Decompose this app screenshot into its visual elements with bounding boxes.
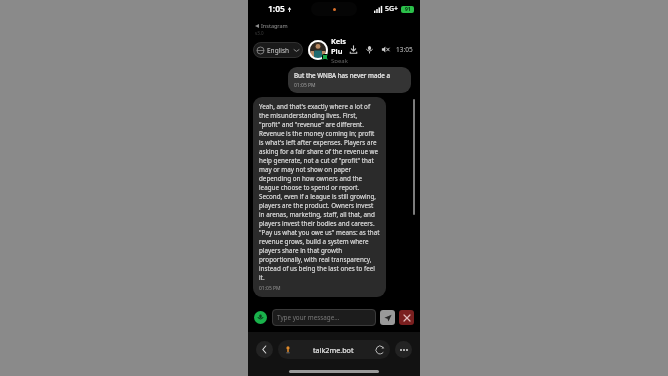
other: Reload: [376, 346, 384, 354]
staticText: talk2me.bot: [313, 345, 354, 355]
button[interactable]: Profile photo: [308, 40, 328, 60]
button[interactable]: Microphone: [364, 44, 375, 55]
button[interactable]: Sound: [380, 44, 391, 55]
button[interactable]: Voice input: [254, 311, 267, 324]
staticText: Plum: [331, 46, 348, 56]
staticText: 91: [405, 6, 411, 13]
staticText: But the WNBA has never made a profit...: [294, 71, 405, 80]
staticText: Speaking...: [331, 57, 348, 63]
staticText: Type your message...: [277, 313, 340, 322]
staticText: 01:05 PM: [259, 285, 281, 292]
button[interactable]: Type your message...: [272, 309, 376, 326]
staticText: v3.0: [255, 30, 264, 36]
button[interactable]: Download: [348, 44, 359, 55]
button[interactable]: Close: [399, 310, 414, 325]
button[interactable]: Yeah, and that's exactly where a lot of …: [253, 97, 386, 297]
staticText: 01:05 PM: [294, 82, 316, 89]
button[interactable]: More options: [395, 341, 412, 358]
button[interactable]: English: [253, 42, 303, 58]
button[interactable]: talk2me.bot: [278, 340, 390, 359]
staticText: English: [267, 46, 290, 55]
staticText: Kelsey: [331, 36, 348, 46]
button[interactable]: Send: [380, 310, 395, 325]
button[interactable]: Back: [256, 341, 273, 358]
staticText: 13:05: [396, 45, 413, 54]
staticText: Instagram: [261, 22, 288, 29]
button[interactable]: But the WNBA has never made a profit...: [288, 67, 411, 93]
staticText: 1:05: [268, 3, 285, 15]
staticText: 5G+: [385, 4, 399, 14]
staticText: Yeah, and that's exactly where a lot of …: [259, 102, 380, 282]
